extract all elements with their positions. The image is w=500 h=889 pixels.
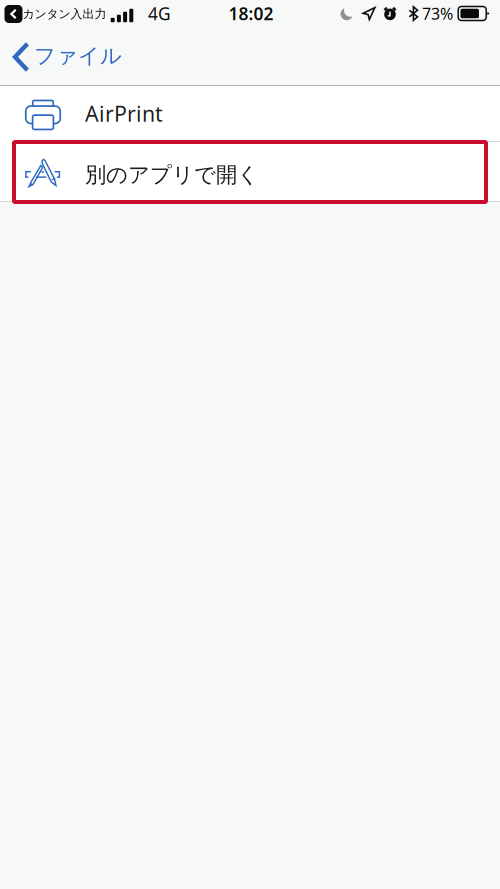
staticText: ファイル xyxy=(34,43,122,69)
staticText: 4G xyxy=(148,2,171,25)
staticText: 18:02 xyxy=(228,2,273,25)
staticText: カンタン入出力 xyxy=(22,7,106,21)
button[interactable]: Back to カンタン入出力 xyxy=(4,5,22,23)
staticText: AirPrint xyxy=(85,99,163,128)
button[interactable]: AirPrint xyxy=(0,86,500,141)
staticText: 別のアプリで開く xyxy=(85,162,259,188)
button[interactable]: 別のアプリで開く xyxy=(0,142,500,201)
button[interactable]: ファイル xyxy=(0,30,136,85)
staticText: 73% xyxy=(422,3,453,24)
